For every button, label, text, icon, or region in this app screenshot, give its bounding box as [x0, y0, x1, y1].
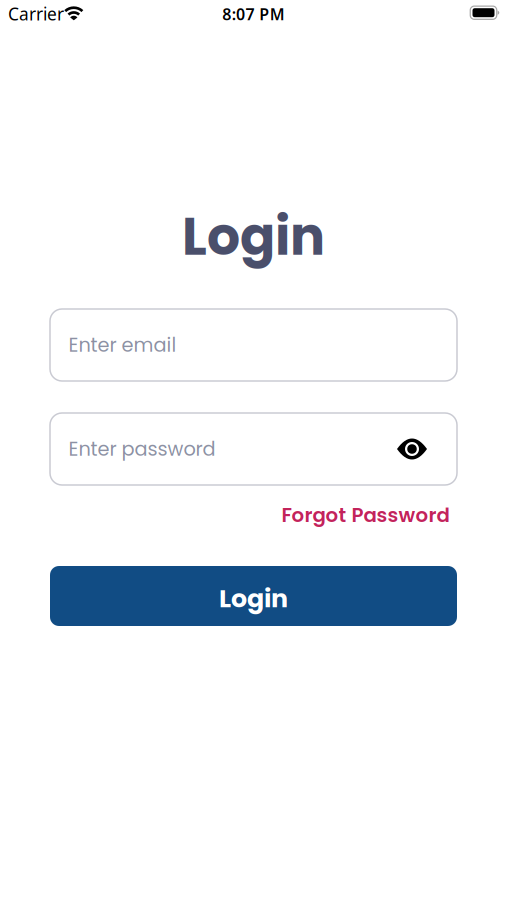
button[interactable]: Show password — [397, 438, 427, 460]
staticText: Enter password — [68, 435, 215, 463]
button[interactable]: Forgot Password — [281, 501, 449, 529]
staticText: 8:07 PM — [222, 3, 285, 25]
button[interactable]: Login — [50, 566, 457, 626]
staticText: Carrier — [8, 2, 64, 25]
button[interactable]: Enter password — [50, 413, 457, 485]
staticText: Login — [182, 200, 325, 273]
staticText: Login — [219, 581, 288, 616]
staticText: Enter email — [68, 331, 176, 359]
staticText: Forgot Password — [281, 501, 449, 529]
button[interactable]: Enter email — [50, 309, 457, 381]
